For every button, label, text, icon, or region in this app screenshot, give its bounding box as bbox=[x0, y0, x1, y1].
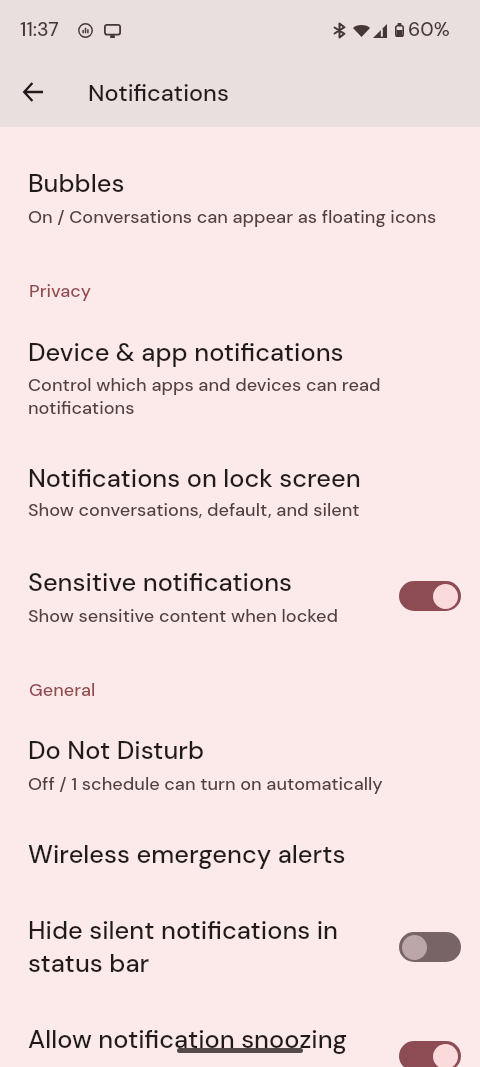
button[interactable] bbox=[0, 320, 480, 424]
staticText: Bubbles bbox=[28, 167, 125, 200]
staticText: Hide silent notifications in status bar bbox=[28, 914, 339, 980]
staticText: Show sensitive content when locked bbox=[28, 604, 339, 628]
button[interactable] bbox=[0, 446, 480, 526]
staticText: General bbox=[29, 678, 96, 701]
staticText: Privacy bbox=[29, 279, 92, 302]
staticText: Off / 1 schedule can turn on automatical… bbox=[28, 772, 383, 796]
staticText: On / Conversations can appear as floatin… bbox=[28, 205, 437, 229]
staticText: Sensitive notifications bbox=[28, 566, 293, 599]
staticText: notifications bbox=[28, 396, 135, 420]
button[interactable]: Switch off bbox=[399, 932, 461, 962]
button[interactable] bbox=[0, 151, 480, 233]
button[interactable] bbox=[0, 550, 480, 632]
staticText: Wireless emergency alerts bbox=[28, 838, 346, 871]
staticText: Allow notification snoozing bbox=[28, 1023, 348, 1056]
staticText: 11:37 bbox=[20, 17, 59, 42]
button[interactable] bbox=[0, 718, 480, 800]
button[interactable] bbox=[0, 1007, 480, 1061]
staticText: Control which apps and devices can read bbox=[28, 373, 381, 397]
button[interactable] bbox=[0, 822, 480, 876]
staticText: Notifications bbox=[88, 78, 229, 109]
button[interactable]: Switch on bbox=[399, 581, 461, 611]
staticText: Device & app notifications bbox=[28, 336, 344, 369]
staticText: Notifications on lock screen bbox=[28, 462, 361, 495]
button[interactable] bbox=[0, 898, 480, 980]
staticText: Do Not Disturb bbox=[28, 734, 205, 767]
button[interactable]: Switch on bbox=[399, 1041, 461, 1067]
button[interactable]: Back bbox=[9, 68, 57, 116]
staticText: Show conversations, default, and silent bbox=[28, 498, 360, 522]
staticText: 60% bbox=[408, 17, 450, 42]
